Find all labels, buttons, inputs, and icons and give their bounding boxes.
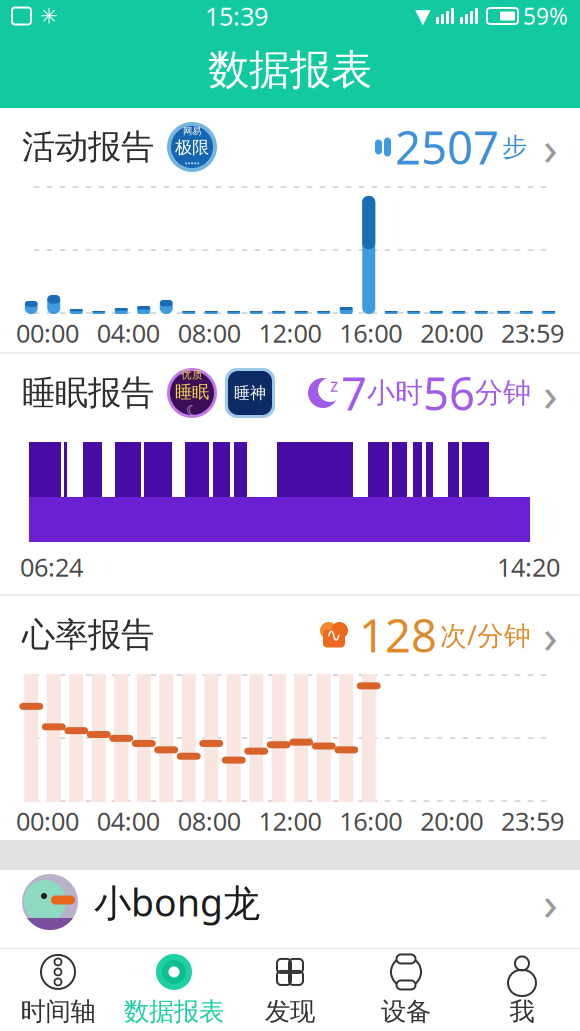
staticText: 极限 (175, 137, 209, 158)
button[interactable]: 数据报表 (116, 949, 232, 1031)
staticText: › (543, 603, 558, 667)
staticText: ✳ (40, 4, 58, 28)
staticText: 时间轴 (20, 996, 95, 1027)
staticText: 网易 (183, 125, 201, 137)
staticText: 56 (423, 363, 475, 423)
button[interactable]: 发现 (232, 949, 348, 1031)
staticText: 7 (341, 363, 367, 423)
staticText: 04:00 (97, 804, 160, 838)
staticText: 设备 (381, 996, 431, 1027)
staticText: 04:00 (97, 316, 160, 350)
staticText: 00:00 (16, 316, 79, 350)
staticText: 128 (359, 605, 437, 665)
staticText: 心率报告 (22, 614, 154, 655)
button[interactable]: 心率报告 (0, 596, 580, 840)
staticText: 数据报表 (208, 45, 372, 95)
staticText: ∿ (326, 624, 342, 646)
staticText: z (330, 373, 338, 396)
staticText: › (543, 361, 558, 425)
staticText: 23:59 (501, 804, 564, 838)
staticText: 59% (523, 1, 568, 31)
staticText: 08:00 (178, 804, 241, 838)
staticText: 睡眠报告 (22, 372, 154, 413)
staticText: 活动报告 (22, 126, 154, 167)
staticText: 睡眠 (175, 381, 209, 403)
staticText: 分钟 (475, 376, 531, 410)
staticText: 数据报表 (124, 996, 224, 1027)
staticText: 00:00 (16, 804, 79, 838)
button[interactable]: 睡眠报告 (0, 354, 580, 594)
staticText: ▼ (415, 5, 430, 27)
staticText: 23:59 (501, 316, 564, 350)
staticText: 小时 (367, 376, 423, 410)
staticText: 12:00 (258, 316, 321, 350)
button[interactable]: 活动报告 (0, 108, 580, 352)
staticText: 15:39 (205, 0, 268, 33)
staticText: 发现 (265, 996, 315, 1027)
staticText: ☾ (186, 403, 198, 418)
staticText: 睡神 (234, 383, 266, 403)
staticText: 16:00 (339, 804, 402, 838)
staticText: 16:00 (339, 316, 402, 350)
button[interactable]: 时间轴 (0, 949, 116, 1031)
staticText: 2507 (395, 117, 499, 177)
staticText: › (543, 115, 558, 179)
staticText: 20:00 (420, 316, 483, 350)
staticText: 步 (502, 131, 527, 162)
staticText: 优质 (181, 368, 203, 381)
staticText: › (543, 870, 558, 934)
staticText: 我 (509, 996, 534, 1027)
button[interactable]: 小bong龙 (0, 870, 580, 934)
staticText: 次/分钟 (440, 617, 531, 653)
staticText: 06:24 (20, 550, 83, 584)
staticText: 20:00 (420, 804, 483, 838)
button[interactable]: 设备 (348, 949, 464, 1031)
staticText: 08:00 (178, 316, 241, 350)
staticText: ••••• (184, 158, 199, 169)
button[interactable]: 我 (464, 949, 580, 1031)
staticText: 12:00 (258, 804, 321, 838)
staticText: 小bong龙 (94, 877, 260, 927)
staticText: 14:20 (497, 550, 560, 584)
